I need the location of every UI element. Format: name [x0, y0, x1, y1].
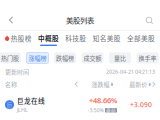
- button[interactable]: 量比: [109, 52, 131, 63]
- button[interactable]: 科技股: [65, 33, 86, 46]
- staticText: 名称: [5, 80, 17, 89]
- staticText: 全部美股: [127, 33, 155, 43]
- button[interactable]: 涨跌幅: [91, 80, 113, 89]
- button[interactable]: 中概股: [38, 33, 59, 46]
- staticText: 中概股: [38, 33, 59, 43]
- staticText: 更新时间: [5, 67, 29, 76]
- staticText: 热门股: [1, 54, 19, 62]
- staticText: 美股列表: [66, 15, 94, 25]
- staticText: 盘前: [106, 107, 116, 114]
- staticText: 涨幅榜: [28, 54, 46, 62]
- staticText: 跌幅榜: [56, 54, 74, 62]
- staticText: -3.50%: [87, 107, 103, 114]
- staticText: 换手率: [138, 54, 156, 62]
- staticText: +48.66%: [89, 95, 117, 105]
- staticText: 2026-04-21 04:21:13: [106, 68, 155, 75]
- button[interactable]: 换手率: [136, 52, 158, 63]
- staticText: 科技股: [65, 33, 86, 43]
- button[interactable]: 涨幅榜: [26, 52, 48, 63]
- button[interactable]: 成交额: [81, 52, 103, 63]
- button[interactable]: 最新价: [129, 80, 151, 89]
- button[interactable]: 知名美股: [93, 33, 121, 46]
- button[interactable]: 热门股: [0, 52, 21, 63]
- staticText: JLHL: [17, 106, 28, 114]
- staticText: 巨: [6, 100, 12, 109]
- button[interactable]: Back: [2, 10, 20, 30]
- staticText: 巨龙在线: [17, 96, 45, 105]
- staticText: 成交额: [83, 54, 101, 62]
- staticText: 知名美股: [93, 33, 121, 43]
- button[interactable]: 巨: [0, 91, 160, 116]
- button[interactable]: 跌幅榜: [54, 52, 76, 63]
- staticText: 最新价: [129, 80, 147, 89]
- button[interactable]: 全部美股: [127, 33, 155, 46]
- button[interactable]: Search: [140, 10, 158, 30]
- staticText: 量比: [114, 54, 126, 62]
- staticText: +3.090: [130, 100, 152, 109]
- button[interactable]: 热股榜: [5, 33, 32, 46]
- staticText: 涨跌幅: [91, 80, 109, 89]
- staticText: 热股榜: [11, 33, 32, 43]
